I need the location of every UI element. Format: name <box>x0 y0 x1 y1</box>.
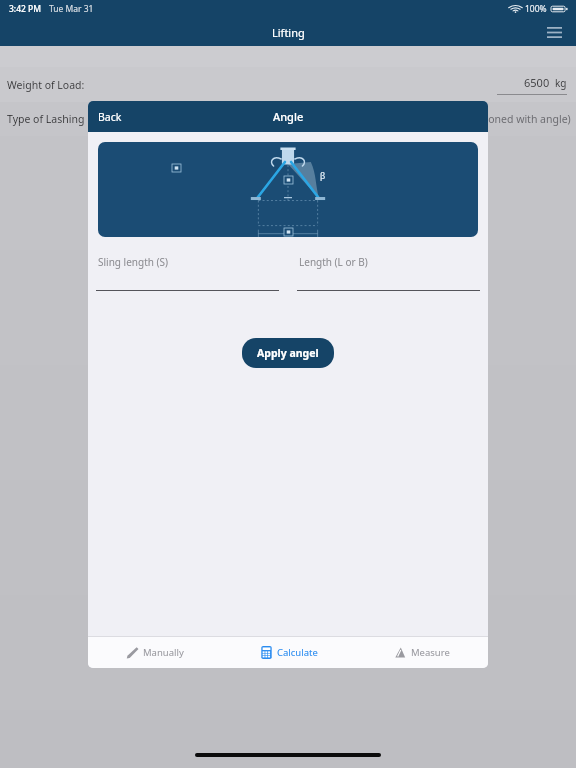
staticText: kg <box>555 76 567 90</box>
staticText: Weight of Load: <box>7 78 85 92</box>
button[interactable]: Apply angel <box>242 338 334 368</box>
staticText: Angle <box>273 109 304 124</box>
staticText: Calculate <box>277 646 318 659</box>
staticText: Tue Mar 31 <box>49 3 94 15</box>
button[interactable]: Calculate <box>222 636 355 668</box>
staticText: Manually <box>143 646 184 659</box>
staticText: Type of Lashing <box>7 112 85 126</box>
staticText: β <box>320 170 326 182</box>
button[interactable]: Menu <box>541 19 567 45</box>
staticText: Sling length (S) <box>98 255 169 269</box>
staticText: Length (L or B) <box>299 255 368 269</box>
button[interactable]: Length (L or B) <box>297 255 480 291</box>
button[interactable]: Back <box>92 105 128 129</box>
staticText: Measure <box>411 646 450 659</box>
button[interactable]: Measure <box>355 636 488 668</box>
staticText: 6500 <box>524 75 550 90</box>
staticText: Apply angel <box>257 346 319 360</box>
staticText: 3:42 PM <box>9 3 42 15</box>
staticText: Lifting <box>272 25 305 40</box>
button[interactable]: Sling length (S) <box>96 255 279 291</box>
button[interactable]: Manually <box>88 636 222 668</box>
staticText: 100% <box>525 3 547 15</box>
staticText: Back <box>98 110 122 124</box>
staticText: ortioned with angle) <box>471 112 571 126</box>
